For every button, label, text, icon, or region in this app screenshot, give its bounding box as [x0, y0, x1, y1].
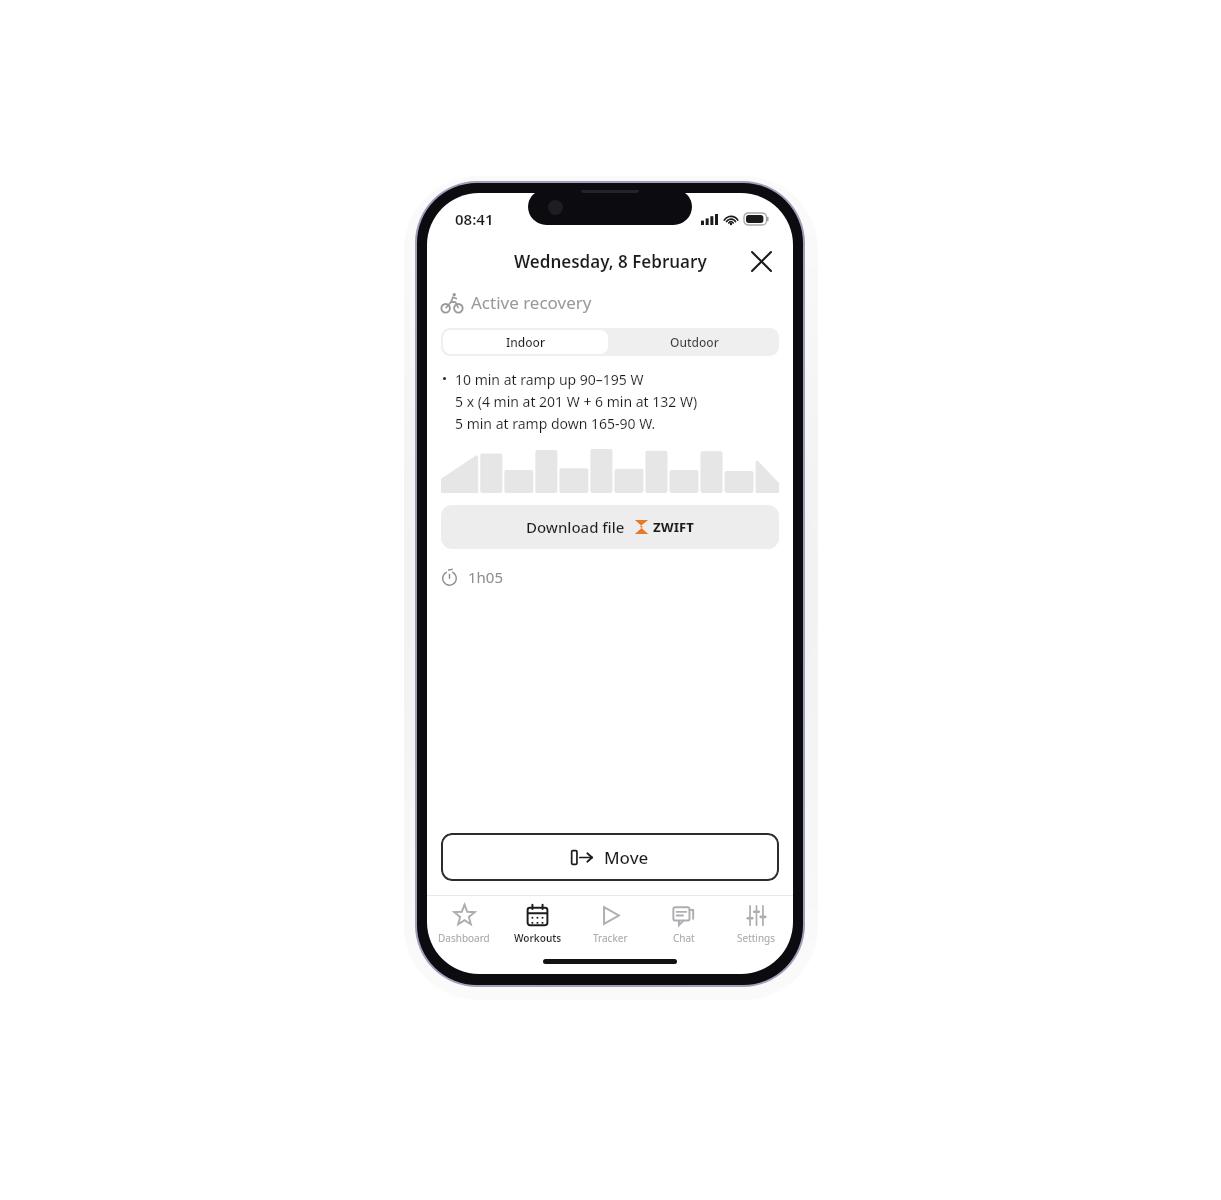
button[interactable]: Workouts	[501, 896, 574, 952]
staticText: 5 x (4 min at 201 W + 6 min at 132 W)	[455, 392, 698, 411]
staticText: Tracker	[593, 931, 628, 945]
button[interactable]: Indoor	[443, 330, 608, 354]
button[interactable]: Move	[441, 833, 779, 881]
staticText: Download file	[526, 517, 625, 537]
staticText: Move	[604, 846, 649, 869]
button[interactable]: Outdoor	[610, 328, 779, 356]
staticText: ZWIFT	[653, 518, 694, 536]
staticText: 08:41	[455, 209, 494, 229]
staticText: Dashboard	[438, 931, 490, 945]
button[interactable]: Tracker	[574, 896, 647, 952]
staticText: 5 min at ramp down 165-90 W.	[455, 414, 656, 433]
staticText: Indoor	[506, 334, 545, 350]
button[interactable]: Dashboard	[427, 896, 501, 952]
staticText: Chat	[673, 931, 695, 945]
button[interactable]: Close	[741, 241, 781, 281]
button[interactable]: Settings	[720, 896, 793, 952]
staticText: Outdoor	[670, 334, 719, 350]
button[interactable]: Active recovery	[441, 291, 779, 314]
button[interactable]: Chat	[647, 896, 720, 952]
staticText: 1h05	[468, 567, 504, 587]
staticText: Workouts	[514, 931, 562, 945]
button[interactable]: 1h05	[441, 567, 779, 587]
staticText: Wednesday, 8 February	[514, 250, 707, 273]
staticText: Settings	[737, 931, 776, 945]
staticText: Active recovery	[471, 291, 592, 314]
staticText: 10 min at ramp up 90–195 W	[455, 370, 644, 389]
button[interactable]: Download file	[441, 505, 779, 549]
